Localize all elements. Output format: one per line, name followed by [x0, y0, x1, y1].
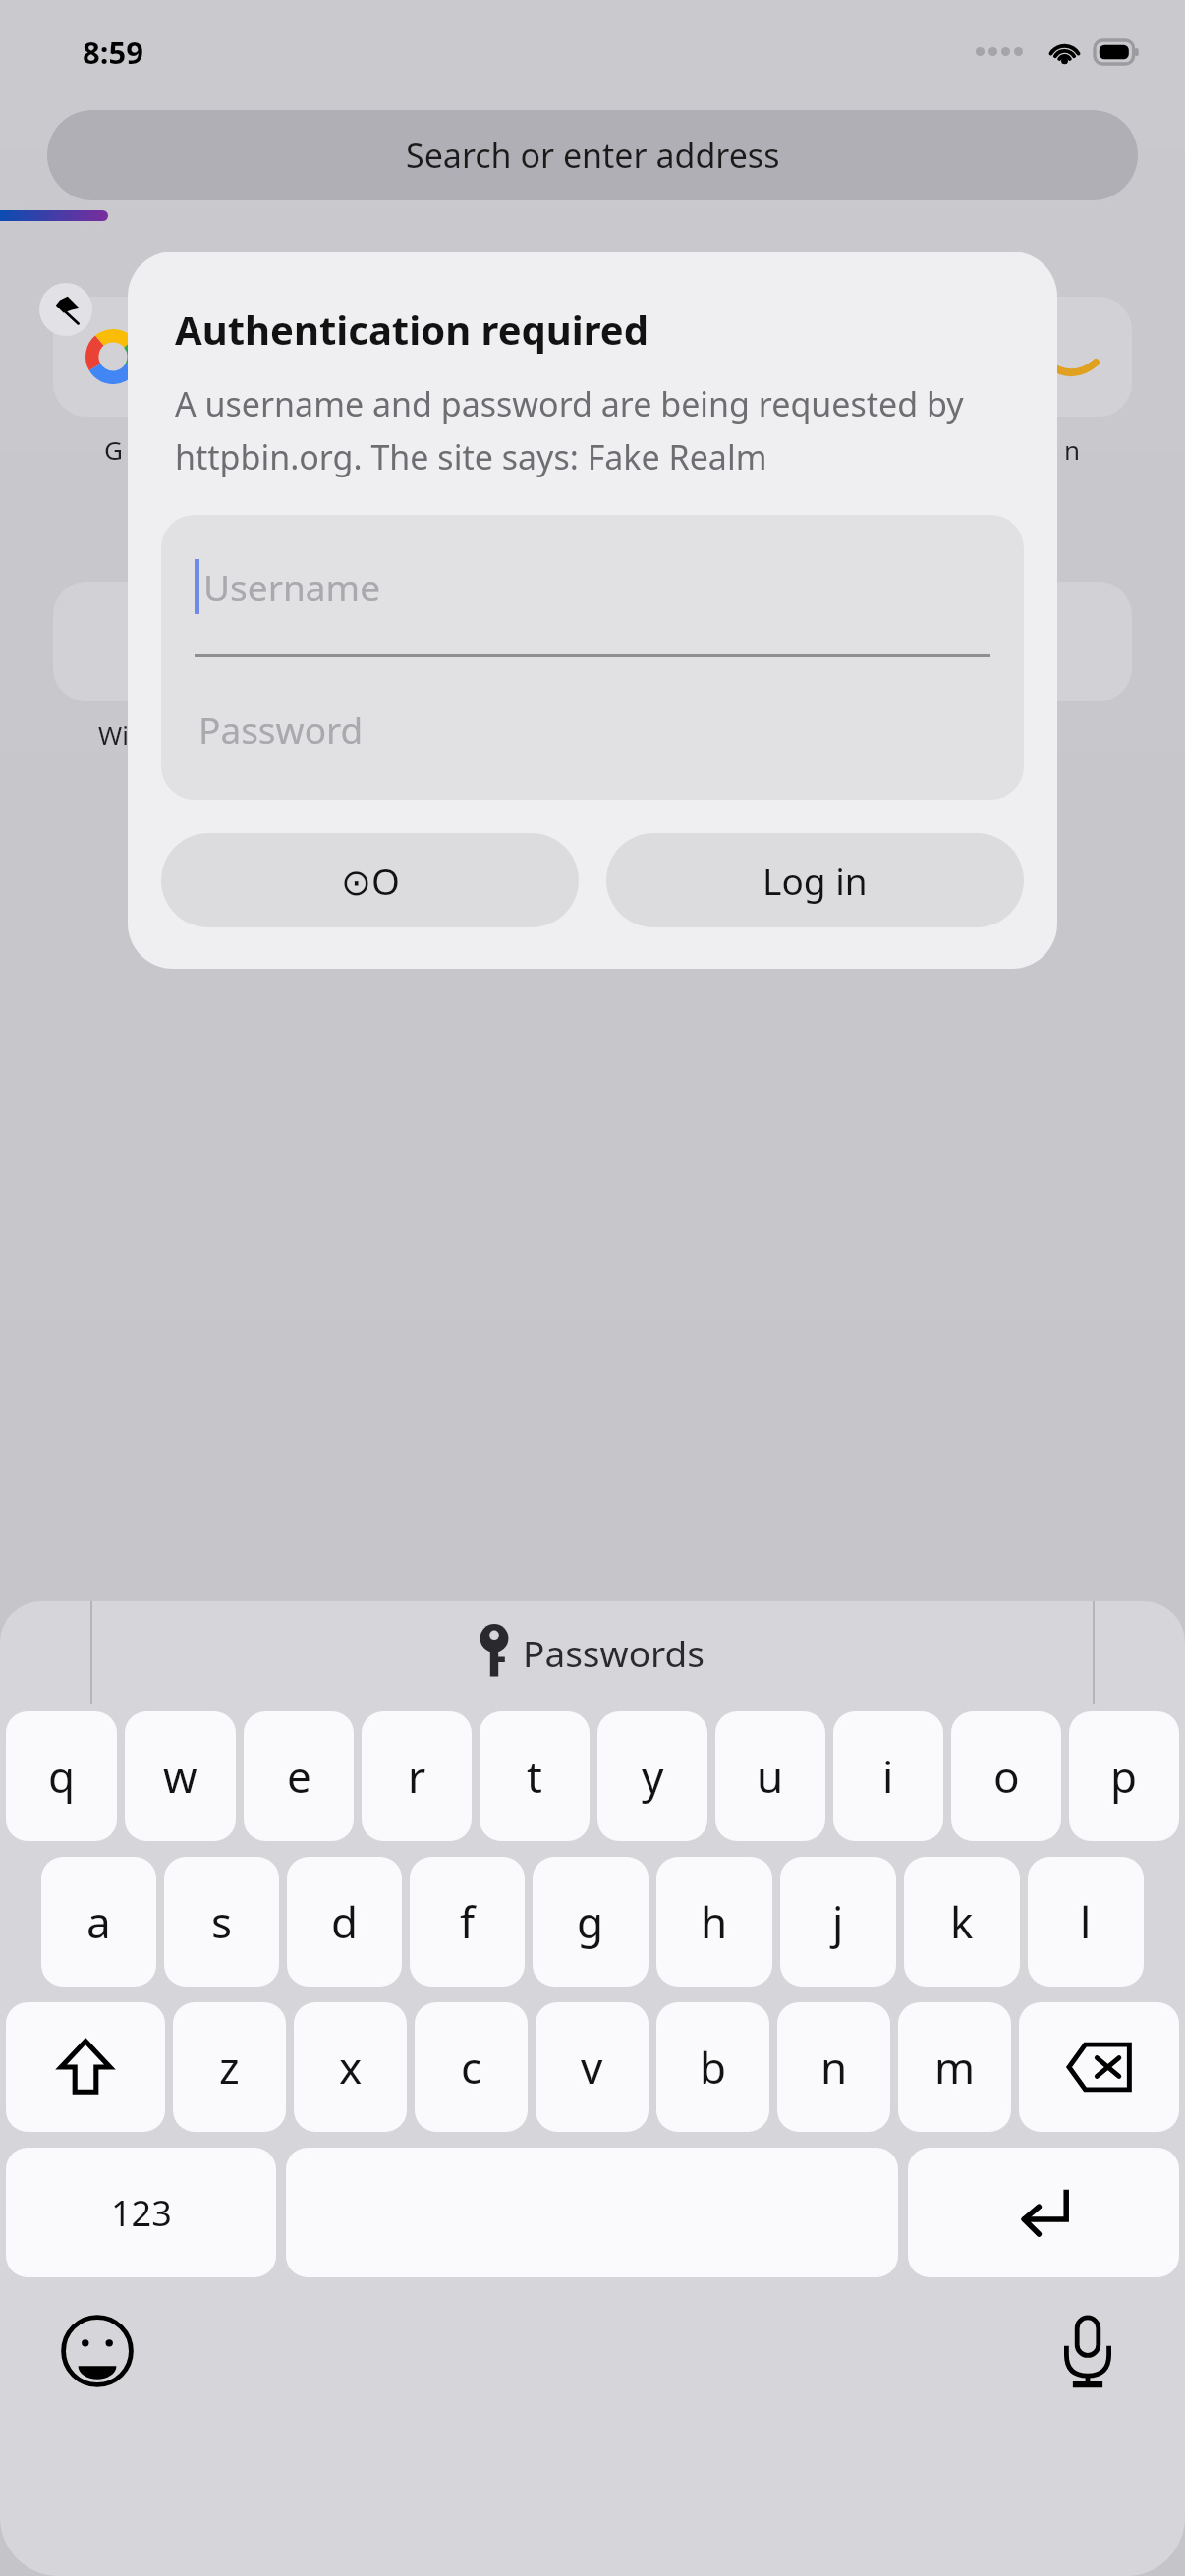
button[interactable]: [679, 293, 826, 432]
staticText: h: [701, 1892, 728, 1951]
button[interactable]: [359, 293, 506, 432]
staticText: q: [48, 1747, 76, 1806]
staticText: b: [700, 2038, 727, 2097]
staticText: u: [757, 1747, 784, 1806]
staticText: n: [820, 2038, 848, 2097]
button[interactable]: Search or enter address: [47, 110, 1138, 200]
staticText: v: [581, 2038, 603, 2097]
button[interactable]: z: [173, 2002, 286, 2132]
button[interactable]: [998, 578, 1146, 717]
button[interactable]: 123: [6, 2148, 276, 2277]
button[interactable]: w: [125, 1711, 236, 1841]
button[interactable]: s: [164, 1857, 279, 1987]
staticText: ⊙O: [341, 856, 400, 905]
staticText: j: [832, 1892, 844, 1951]
button[interactable]: Username: [161, 515, 1024, 657]
button[interactable]: c: [415, 2002, 528, 2132]
staticText: o: [993, 1747, 1020, 1806]
button[interactable]: k: [904, 1857, 1020, 1987]
button[interactable]: ⊙O: [161, 833, 579, 927]
button[interactable]: e: [244, 1711, 354, 1841]
staticText: i: [882, 1747, 894, 1806]
staticText: n: [1064, 432, 1081, 467]
staticText: 8:59: [83, 31, 143, 73]
staticText: p: [1110, 1747, 1138, 1806]
staticText: r: [408, 1747, 426, 1806]
button[interactable]: f: [410, 1857, 525, 1987]
button[interactable]: o: [951, 1711, 1061, 1841]
button[interactable]: a: [41, 1857, 156, 1987]
staticText: g: [577, 1892, 604, 1951]
button[interactable]: [679, 578, 826, 717]
button[interactable]: l: [1028, 1857, 1144, 1987]
button[interactable]: b: [656, 2002, 769, 2132]
button[interactable]: Wi: [39, 578, 187, 752]
button[interactable]: y: [597, 1711, 707, 1841]
staticText: d: [331, 1892, 359, 1951]
button[interactable]: v: [536, 2002, 649, 2132]
button[interactable]: Enter: [908, 2148, 1179, 2277]
button[interactable]: G: [39, 293, 187, 467]
button[interactable]: g: [533, 1857, 649, 1987]
button[interactable]: n: [998, 293, 1146, 467]
staticText: z: [219, 2038, 240, 2097]
button[interactable]: p: [1069, 1711, 1179, 1841]
staticText: A username and password are being reques…: [175, 381, 1010, 479]
staticText: Password: [198, 704, 364, 754]
button[interactable]: t: [480, 1711, 590, 1841]
button[interactable]: j: [780, 1857, 896, 1987]
staticText: t: [527, 1747, 542, 1806]
button[interactable]: m: [898, 2002, 1011, 2132]
button[interactable]: q: [6, 1711, 117, 1841]
button[interactable]: Voice input: [1045, 2309, 1130, 2393]
staticText: Username: [203, 562, 381, 611]
staticText: Authentication required: [175, 303, 649, 356]
staticText: Wi: [98, 717, 129, 752]
button[interactable]: Log in: [606, 833, 1024, 927]
button[interactable]: d: [287, 1857, 402, 1987]
staticText: m: [934, 2038, 976, 2097]
staticText: Log in: [762, 856, 868, 905]
staticText: G: [104, 432, 123, 467]
button[interactable]: Shift: [6, 2002, 165, 2132]
button[interactable]: [359, 578, 506, 717]
staticText: s: [211, 1892, 233, 1951]
button[interactable]: h: [656, 1857, 772, 1987]
button[interactable]: Password: [161, 657, 1024, 800]
button[interactable]: i: [833, 1711, 943, 1841]
button[interactable]: r: [362, 1711, 472, 1841]
button[interactable]: Passwords: [480, 1627, 705, 1678]
button[interactable]: x: [294, 2002, 407, 2132]
staticText: l: [1080, 1892, 1092, 1951]
staticText: y: [642, 1747, 664, 1806]
staticText: e: [287, 1747, 311, 1806]
button[interactable]: Emoji: [55, 2309, 140, 2393]
staticText: 123: [111, 2189, 172, 2237]
staticText: Search or enter address: [406, 133, 780, 178]
button[interactable]: n: [777, 2002, 890, 2132]
staticText: a: [86, 1892, 111, 1951]
button[interactable]: Backspace: [1019, 2002, 1179, 2132]
staticText: Passwords: [523, 1628, 705, 1677]
staticText: c: [461, 2038, 482, 2097]
staticText: w: [163, 1747, 197, 1806]
staticText: f: [460, 1892, 476, 1951]
button[interactable]: u: [715, 1711, 825, 1841]
staticText: x: [339, 2038, 363, 2097]
staticText: k: [950, 1892, 974, 1951]
